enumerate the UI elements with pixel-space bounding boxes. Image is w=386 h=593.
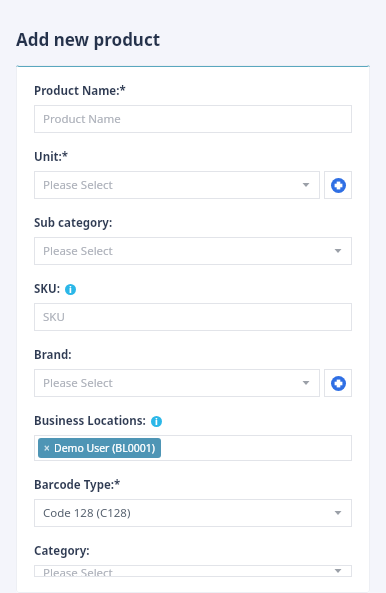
staticText: Add new product	[16, 28, 161, 51]
button[interactable]: Add new	[324, 369, 352, 397]
button[interactable]: Code 128 (C128)	[34, 499, 352, 527]
staticText: Code 128 (C128)	[43, 505, 330, 521]
staticText: Unit:*	[34, 149, 69, 165]
staticText: Demo User (BL0001)	[54, 441, 155, 455]
staticText: i	[69, 284, 72, 295]
staticText: ×	[44, 441, 50, 455]
button[interactable]: Please Select	[34, 237, 352, 265]
staticText: Sub category:	[34, 215, 113, 231]
staticText: Brand:	[34, 347, 72, 363]
staticText: Product Name	[43, 111, 121, 127]
button[interactable]: SKU	[34, 303, 352, 331]
staticText: Please Select	[43, 375, 298, 391]
staticText: Please Select	[43, 565, 330, 577]
button[interactable]: Add new	[324, 171, 352, 199]
button[interactable]: ×	[38, 438, 161, 458]
staticText: Business Locations:	[34, 413, 146, 429]
button[interactable]: Product Name	[34, 105, 352, 133]
button[interactable]: Please Select	[34, 565, 352, 577]
staticText: Please Select	[43, 243, 330, 259]
staticText: i	[155, 416, 158, 427]
button[interactable]: ×	[34, 435, 352, 461]
button[interactable]: Please Select	[34, 171, 320, 199]
button[interactable]: More information	[65, 284, 76, 295]
staticText: SKU:	[34, 281, 60, 297]
staticText: SKU	[43, 309, 65, 325]
staticText: Barcode Type:*	[34, 477, 121, 493]
button[interactable]: Please Select	[34, 369, 320, 397]
staticText: Product Name:*	[34, 83, 126, 99]
button[interactable]: More information	[151, 416, 162, 427]
staticText: Category:	[34, 543, 90, 559]
staticText: Please Select	[43, 177, 298, 193]
